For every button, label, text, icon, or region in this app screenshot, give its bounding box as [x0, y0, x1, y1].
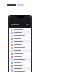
button[interactable]: [9, 55, 31, 58]
button[interactable]: [9, 61, 31, 64]
button[interactable]: [9, 28, 31, 31]
button[interactable]: [9, 40, 31, 43]
button[interactable]: [9, 46, 31, 49]
button[interactable]: [9, 37, 31, 40]
button[interactable]: [9, 64, 31, 67]
button[interactable]: [9, 67, 31, 70]
button[interactable]: [9, 52, 31, 55]
button[interactable]: [9, 34, 31, 37]
button[interactable]: [9, 49, 31, 52]
button[interactable]: App bar: [9, 16, 31, 28]
button[interactable]: [9, 43, 31, 46]
button[interactable]: [9, 58, 31, 61]
button[interactable]: [9, 70, 31, 72]
button[interactable]: [9, 31, 31, 34]
